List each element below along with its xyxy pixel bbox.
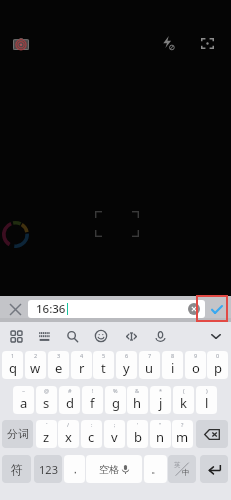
button[interactable]: : — [81, 420, 102, 448]
button[interactable]: ) — [196, 386, 217, 414]
button[interactable]: Confirm — [205, 296, 229, 322]
staticText: 1 — [11, 352, 15, 359]
button[interactable]: * — [150, 386, 171, 414]
staticText: x — [65, 428, 72, 446]
staticText: u — [145, 359, 154, 377]
staticText: 2 — [34, 352, 38, 359]
staticText: t — [101, 359, 106, 377]
button[interactable]: ( — [173, 386, 194, 414]
button[interactable]: Emoji — [88, 322, 114, 350]
button[interactable]: @ — [36, 386, 57, 414]
staticText: 3 — [57, 352, 61, 359]
staticText: o — [192, 359, 200, 377]
button[interactable]: Hide keyboard — [204, 322, 228, 350]
staticText: e — [55, 359, 63, 377]
staticText: 7 — [148, 352, 152, 359]
button[interactable]: 4 — [71, 351, 92, 379]
button[interactable]: 5 — [93, 351, 114, 379]
staticText: n — [156, 428, 165, 446]
button[interactable]: Close — [4, 296, 26, 322]
staticText: & — [135, 387, 140, 394]
staticText: 。 — [151, 463, 161, 476]
staticText: " — [159, 421, 162, 428]
button[interactable]: 3 — [48, 351, 69, 379]
staticText: 英 — [174, 461, 181, 469]
button[interactable]: Voice input — [147, 322, 173, 350]
staticText: ( — [183, 387, 185, 394]
staticText: k — [180, 394, 187, 412]
button[interactable]: ? — [172, 420, 193, 448]
staticText: l — [205, 394, 209, 412]
button[interactable]: 空格 — [86, 455, 142, 483]
staticText: a — [20, 394, 28, 412]
button[interactable]: ~ — [13, 386, 34, 414]
button[interactable]: Clear text — [188, 303, 200, 315]
button[interactable]: Keyboard layout — [31, 322, 57, 350]
button[interactable]: 1 — [2, 351, 23, 379]
button[interactable]: Scan document — [196, 32, 219, 54]
button[interactable]: ` — [36, 420, 57, 448]
button[interactable]: Flash off — [158, 33, 178, 53]
staticText: 16:36 — [36, 301, 66, 317]
button[interactable]: 16:36 — [28, 300, 205, 318]
staticText: : — [91, 421, 93, 428]
staticText: y — [123, 359, 130, 377]
button[interactable]: Switch language — [168, 455, 196, 483]
staticText: ? — [181, 421, 184, 428]
button[interactable]: ， — [64, 455, 85, 483]
button[interactable]: Apps — [3, 322, 29, 350]
staticText: 4 — [80, 352, 84, 359]
button[interactable]: 符 — [2, 455, 31, 483]
staticText: 8 — [171, 352, 175, 359]
staticText: f — [90, 394, 95, 412]
staticText: c — [88, 428, 95, 446]
staticText: s — [43, 394, 50, 412]
staticText: % — [113, 387, 118, 394]
button[interactable]: ! — [82, 386, 103, 414]
button[interactable]: 7 — [139, 351, 160, 379]
button[interactable]: Backspace — [196, 420, 228, 448]
button[interactable]: ' — [127, 420, 148, 448]
button[interactable]: % — [105, 386, 126, 414]
button[interactable]: 0 — [207, 351, 228, 379]
button[interactable]: Text tools — [118, 322, 144, 350]
button[interactable]: Search — [59, 322, 85, 350]
button[interactable]: 。 — [144, 455, 167, 483]
staticText: 123 — [39, 462, 58, 477]
staticText: 分词 — [7, 427, 29, 441]
staticText: i — [171, 359, 175, 377]
button[interactable]: ; — [104, 420, 125, 448]
staticText: ) — [206, 387, 208, 394]
staticText: 0 — [216, 352, 220, 359]
staticText: q — [9, 359, 17, 377]
staticText: 5 — [102, 352, 106, 359]
button[interactable]: # — [59, 386, 80, 414]
staticText: m — [176, 428, 189, 446]
staticText: h — [133, 394, 142, 412]
button[interactable]: 9 — [185, 351, 206, 379]
button[interactable]: 2 — [25, 351, 46, 379]
button[interactable]: 8 — [162, 351, 183, 379]
button[interactable]: 6 — [116, 351, 137, 379]
button[interactable]: 123 — [34, 455, 62, 483]
staticText: g — [112, 394, 120, 412]
staticText: 中 — [182, 468, 190, 477]
staticText: ; — [114, 421, 116, 428]
staticText: d — [66, 394, 74, 412]
staticText: ! — [92, 387, 94, 394]
staticText: v — [111, 428, 118, 446]
button[interactable]: Camera — [8, 33, 34, 54]
staticText: ~ — [22, 387, 26, 394]
staticText: b — [134, 428, 142, 446]
staticText: * — [159, 387, 163, 394]
staticText: z — [43, 428, 50, 446]
button[interactable]: Enter — [200, 455, 228, 483]
staticText: ` — [46, 421, 48, 428]
button[interactable]: & — [127, 386, 148, 414]
button[interactable]: / — [58, 420, 79, 448]
staticText: p — [214, 359, 222, 377]
button[interactable]: " — [150, 420, 171, 448]
button[interactable]: 分词 — [2, 420, 33, 448]
staticText: 6 — [125, 352, 129, 359]
staticText: / — [67, 421, 70, 428]
